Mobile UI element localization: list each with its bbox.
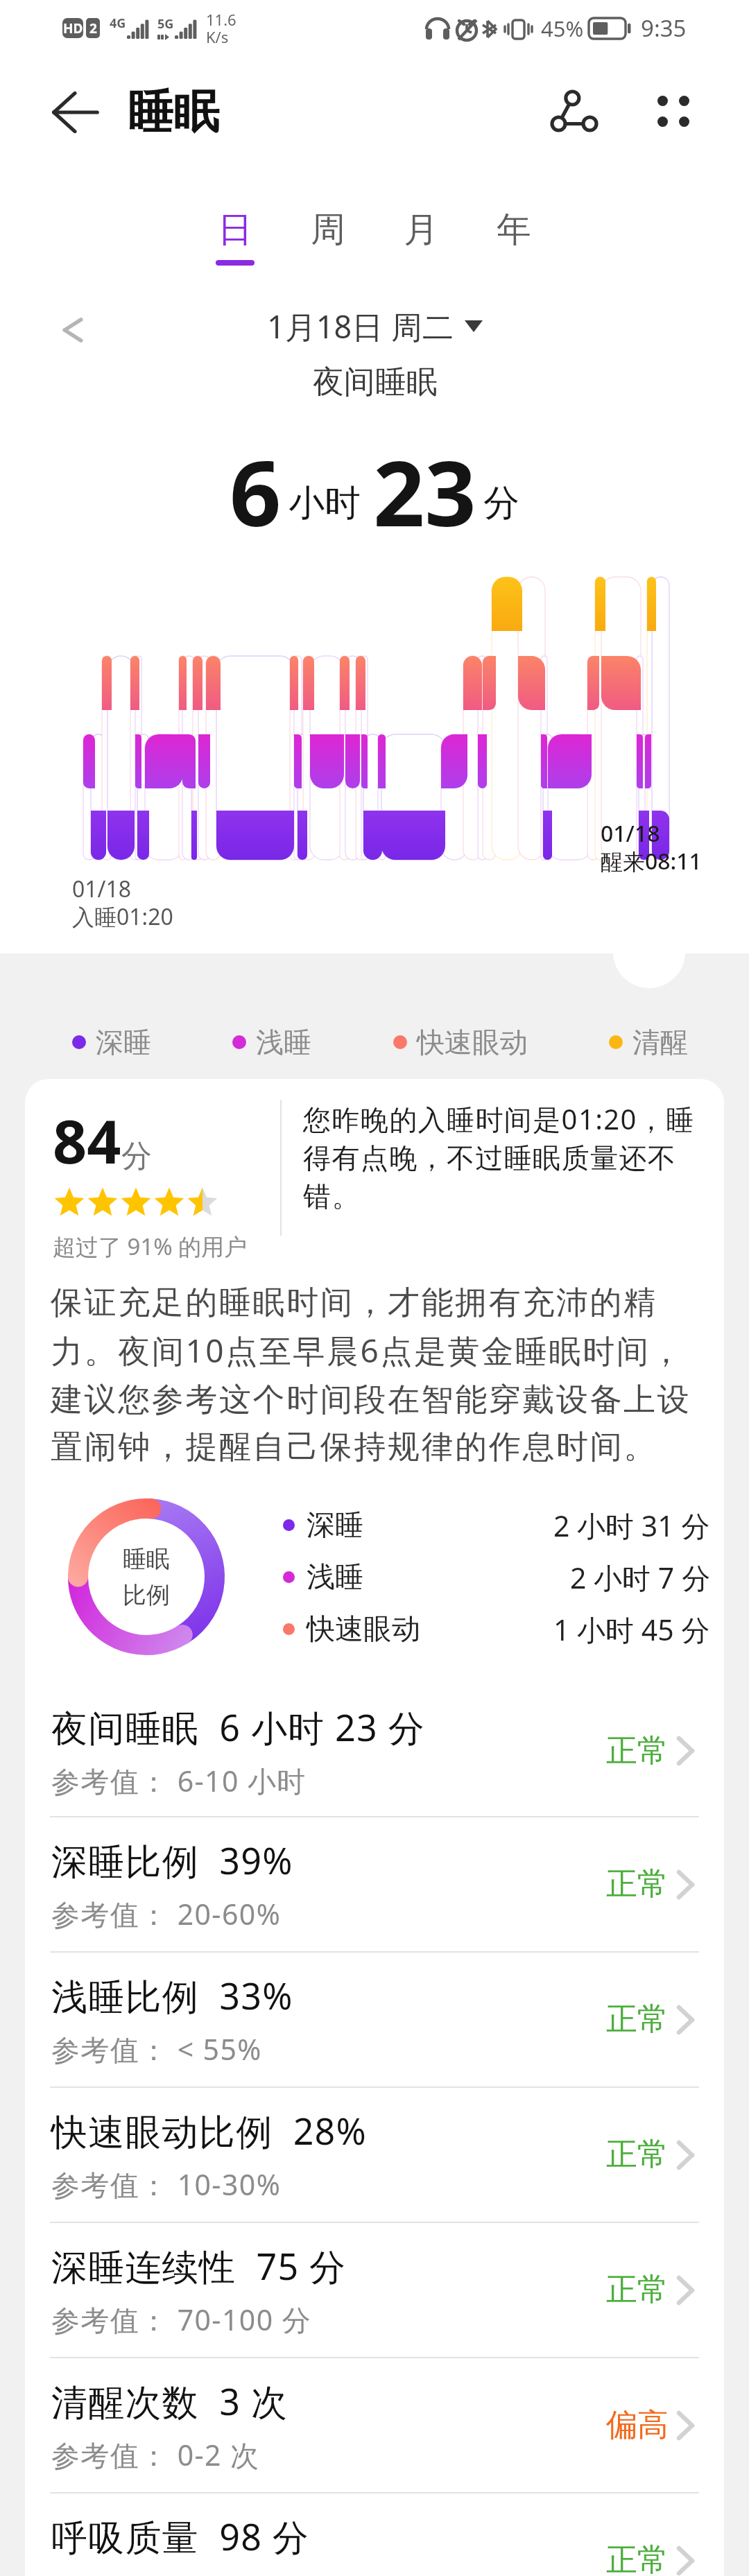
staticText: 4G xyxy=(110,15,126,32)
staticText: 月 xyxy=(404,208,438,252)
button[interactable]: Share xyxy=(542,79,606,143)
staticText: 浅睡比例 33% xyxy=(51,1971,293,2020)
staticText: 参考值： 0-2 次 xyxy=(51,2435,260,2474)
staticText: 快速眼动 xyxy=(307,1611,420,1648)
staticText: 参考值： < 55% xyxy=(51,2030,262,2068)
staticText: 日 xyxy=(218,208,252,252)
staticText: 参考值： 6-10 小时 xyxy=(51,1761,307,1800)
button[interactable]: 1月18日 周二 xyxy=(267,305,483,347)
staticText: HD xyxy=(63,19,83,37)
staticText: 84 xyxy=(53,1100,121,1181)
button[interactable]: 夜间睡眠 6 小时 23 分 xyxy=(25,1686,724,1816)
staticText: 正常 xyxy=(606,2270,669,2310)
button[interactable]: 深睡连续性 75 分 xyxy=(25,2223,724,2357)
staticText: 23 xyxy=(373,430,476,548)
button[interactable]: Back xyxy=(43,80,107,144)
button[interactable]: 深睡比例 39% xyxy=(25,1817,724,1951)
staticText: 参考值： 20-60% xyxy=(51,1894,282,1933)
button[interactable]: 清醒 xyxy=(609,1025,688,1060)
staticText: 清醒次数 3 次 xyxy=(51,2376,289,2426)
staticText: 2 小时 31 分 xyxy=(553,1506,710,1545)
staticText: 深睡 xyxy=(96,1025,151,1060)
staticText: 1月18日 周二 xyxy=(267,305,454,347)
staticText: 正常 xyxy=(606,2135,669,2175)
button[interactable]: Previous day xyxy=(50,311,89,349)
button[interactable]: 月 xyxy=(374,208,467,284)
staticText: 小时 xyxy=(289,481,361,526)
staticText: 01/18 醒来08:11 xyxy=(601,818,702,876)
staticText: 2 xyxy=(89,19,97,37)
staticText: 9:35 xyxy=(641,12,687,44)
staticText: 2 小时 7 分 xyxy=(570,1558,710,1597)
staticText: 睡眠 xyxy=(128,83,219,141)
staticText: 参考值： 10-30% xyxy=(51,2165,282,2204)
button[interactable]: 浅睡 xyxy=(232,1025,311,1060)
staticText: 45% xyxy=(541,14,584,43)
staticText: 深睡比例 39% xyxy=(51,1835,293,1885)
staticText: 偏高 xyxy=(606,2405,669,2445)
staticText: 清醒 xyxy=(632,1025,688,1060)
staticText: 夜间睡眠 6 小时 23 分 xyxy=(51,1702,425,1752)
staticText: 1 小时 45 分 xyxy=(553,1610,710,1649)
staticText: 分 xyxy=(121,1137,152,1175)
staticText: 深睡连续性 75 分 xyxy=(51,2241,347,2290)
staticText: 您昨晚的入睡时间是01:20，睡得有点晚，不过睡眠质量还不错。 xyxy=(303,1100,714,1214)
staticText: 深睡 xyxy=(307,1507,363,1544)
button[interactable]: 呼吸质量 98 分 xyxy=(25,2493,724,2576)
button[interactable]: 深睡 xyxy=(72,1025,151,1060)
staticText: 呼吸质量 98 分 xyxy=(51,2512,310,2561)
staticText: 快速眼动 xyxy=(417,1025,528,1060)
button[interactable]: More options xyxy=(642,79,705,143)
staticText: 正常 xyxy=(606,2541,669,2576)
staticText: 分 xyxy=(483,481,519,526)
staticText: 年 xyxy=(497,208,531,252)
staticText: 参考值： 70-100 分 xyxy=(51,2300,311,2339)
staticText: 正常 xyxy=(606,2000,669,2039)
staticText: 超过了 91% 的用户 xyxy=(53,1231,248,1262)
button[interactable]: 浅睡比例 33% xyxy=(25,1953,724,2086)
staticText: 浅睡 xyxy=(307,1559,363,1596)
button[interactable]: 清醒次数 3 次 xyxy=(25,2358,724,2492)
staticText: 快速眼动比例 28% xyxy=(51,2106,367,2155)
button[interactable]: 快速眼动 xyxy=(393,1025,528,1060)
staticText: 5G xyxy=(157,15,174,33)
staticText: 夜间睡眠 xyxy=(313,363,438,402)
button[interactable]: 日 xyxy=(189,208,282,284)
button[interactable]: Chart scrubber xyxy=(613,916,685,988)
staticText: 睡眠 比例 xyxy=(123,1544,170,1610)
staticText: 6 xyxy=(230,430,282,548)
staticText: 01/18 入睡01:20 xyxy=(72,874,173,932)
staticText: 周 xyxy=(311,208,345,252)
staticText: 浅睡 xyxy=(256,1025,311,1060)
staticText: 11.6 K/s xyxy=(206,9,236,47)
staticText: 正常 xyxy=(606,1731,669,1771)
staticText: 正常 xyxy=(606,1865,669,1904)
button[interactable]: 快速眼动比例 28% xyxy=(25,2088,724,2222)
button[interactable]: 年 xyxy=(467,208,560,284)
staticText: 保证充足的睡眠时间，才能拥有充沛的精力。夜间10点至早晨6点是黄金睡眠时间，建议… xyxy=(51,1283,700,1467)
button[interactable]: 周 xyxy=(282,208,374,284)
